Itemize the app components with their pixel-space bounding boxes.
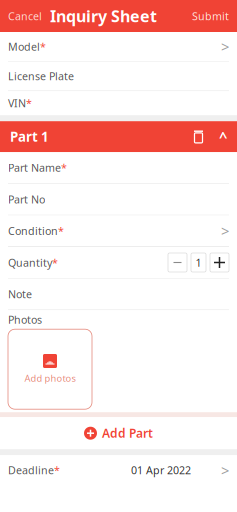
staticText: > <box>221 221 229 241</box>
staticText: Cancel <box>8 9 42 23</box>
staticText: Submit <box>192 9 229 23</box>
staticText: * <box>61 161 67 175</box>
staticText: Note <box>8 287 32 301</box>
button[interactable]: Increase quantity <box>210 253 229 272</box>
staticText: 1 <box>195 255 201 270</box>
staticText: Add photos <box>24 372 75 384</box>
staticText: * <box>52 255 58 270</box>
button[interactable]: Model <box>0 32 237 62</box>
staticText: Quantity <box>8 255 52 270</box>
staticText: Add Part <box>102 425 153 441</box>
staticText: Part Name <box>8 161 61 175</box>
button[interactable]: Decrease quantity <box>168 253 187 272</box>
staticText: License Plate <box>8 69 74 83</box>
staticText: VIN <box>8 96 26 110</box>
staticText: 01 Apr 2022 <box>131 463 191 477</box>
staticText: Photos <box>8 313 42 327</box>
button[interactable]: Part Name <box>0 152 237 184</box>
staticText: ^ <box>219 127 227 146</box>
staticText: Inquiry Sheet <box>50 5 157 27</box>
button[interactable]: License Plate <box>0 62 237 91</box>
staticText: Model <box>8 39 40 54</box>
button[interactable]: Add Part <box>0 417 237 449</box>
staticText: Deadline <box>8 463 54 477</box>
button[interactable]: Part 1 <box>0 121 237 152</box>
button[interactable]: Deadline <box>0 455 237 485</box>
staticText: > <box>221 37 229 56</box>
staticText: * <box>40 39 46 54</box>
staticText: * <box>26 96 32 110</box>
button[interactable]: Cancel <box>0 0 50 32</box>
staticText: * <box>58 224 64 238</box>
button[interactable]: Part No <box>0 184 237 215</box>
button[interactable]: Condition <box>0 215 237 247</box>
staticText: * <box>54 463 60 477</box>
staticText: Condition <box>8 224 58 238</box>
button[interactable]: Note <box>0 279 237 310</box>
button[interactable]: Submit <box>184 0 237 32</box>
button[interactable]: Add photos <box>8 329 92 409</box>
staticText: Part 1 <box>10 128 49 145</box>
staticText: > <box>221 460 229 480</box>
staticText: Part No <box>8 192 45 206</box>
